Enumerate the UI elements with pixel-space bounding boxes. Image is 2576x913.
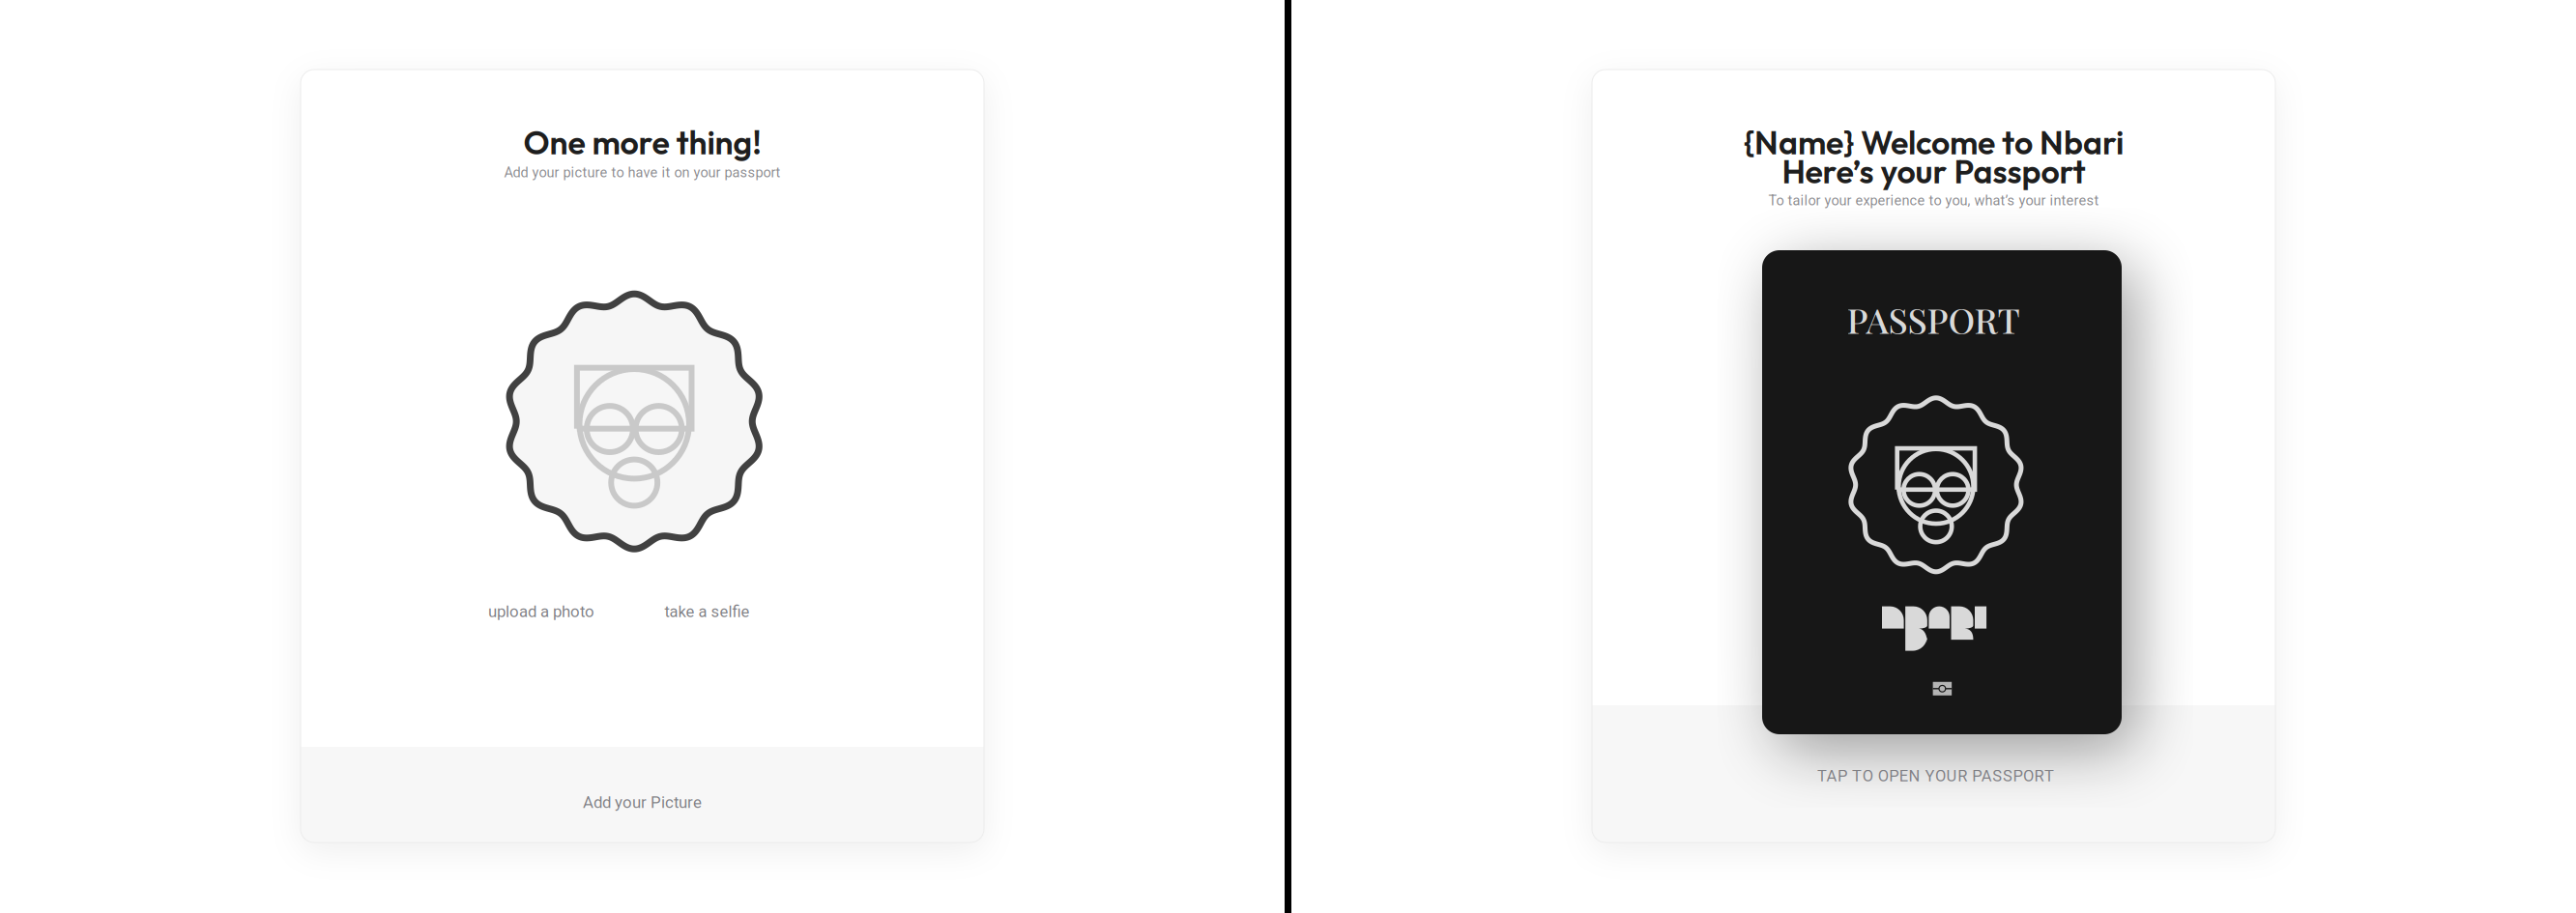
staticText: Add your picture to have it on your pass…	[504, 164, 781, 181]
staticText: upload a photo	[488, 602, 595, 621]
button[interactable]: Add a profile photo	[507, 294, 762, 549]
button[interactable]: Add your Picture	[301, 747, 984, 842]
staticText: TAP TO OPEN YOUR PASSPORT	[1817, 766, 2054, 785]
button[interactable]: TAP TO OPEN YOUR PASSPORT	[1781, 762, 2090, 789]
staticText: One more thing!	[523, 122, 761, 163]
button[interactable]: upload a photo	[469, 597, 614, 626]
staticText: PASSPORT	[1847, 296, 2020, 343]
button[interactable]: take a selfie	[644, 597, 770, 626]
button[interactable]: Open your passport	[1762, 250, 2122, 734]
staticText: Add your Picture	[583, 793, 702, 812]
staticText: To tailor your experience to you, what’s…	[1768, 192, 2099, 209]
staticText: Here’s your Passport	[1782, 151, 2085, 192]
staticText: take a selfie	[665, 602, 750, 621]
staticText: {Name} Welcome to Nbari	[1744, 122, 2124, 163]
